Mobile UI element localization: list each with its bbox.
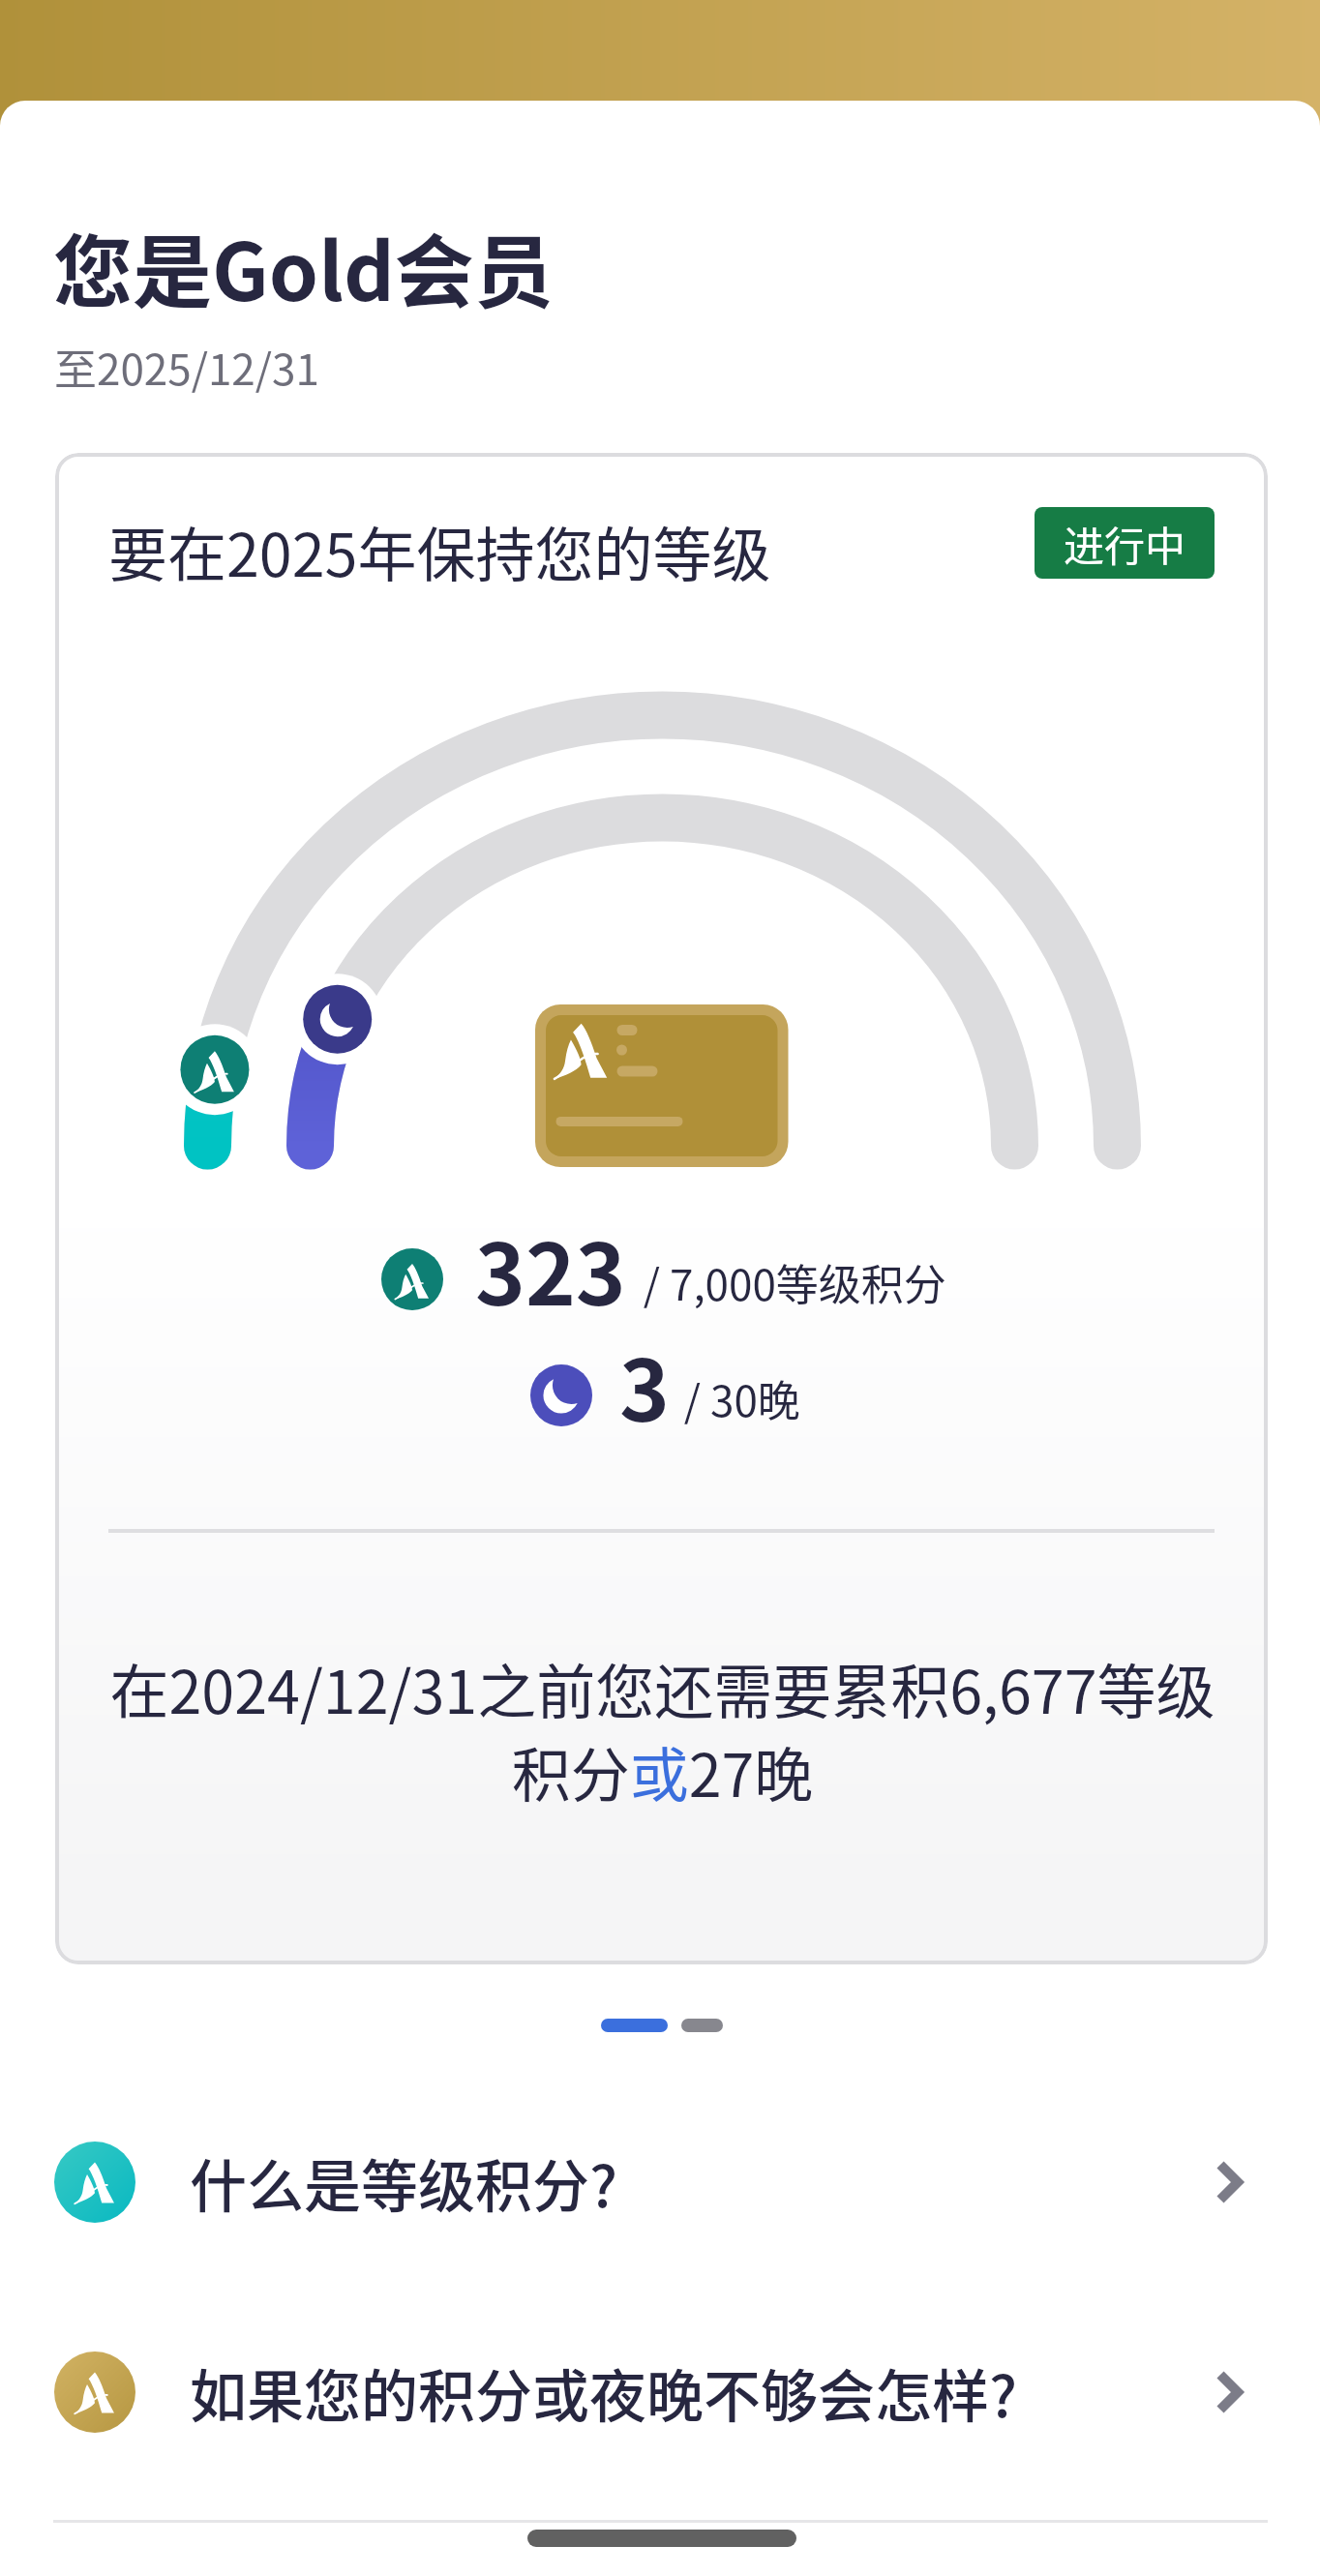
button[interactable]: 第 1 页 bbox=[601, 2019, 668, 2032]
button[interactable]: 打开 bbox=[1215, 2375, 1258, 2417]
staticText: 323 bbox=[475, 1207, 626, 1330]
staticText: 要在2025年保持您的等级 bbox=[108, 508, 771, 593]
button[interactable]: 打开 bbox=[1215, 2165, 1258, 2207]
staticText: 什么是等级积分? bbox=[190, 2142, 618, 2224]
button[interactable]: 第 2 页 bbox=[681, 2019, 723, 2032]
staticText: 进行中 bbox=[1064, 514, 1186, 573]
staticText: / 30晚 bbox=[675, 1367, 800, 1429]
staticText: 您是Gold会员 bbox=[53, 209, 554, 324]
staticText: / 7,000等级积分 bbox=[634, 1251, 946, 1313]
staticText: 如果您的积分或夜晚不够会怎样? bbox=[190, 2351, 1018, 2434]
staticText: 在2024/12/31之前您还需要累积6,677等级积分或27晚 bbox=[104, 1645, 1221, 1813]
staticText: 至2025/12/31 bbox=[54, 336, 319, 398]
button[interactable]: 进行中 bbox=[1035, 507, 1215, 579]
button[interactable]: 要在2025年保持您的等级 bbox=[55, 453, 1268, 1964]
staticText: 3 bbox=[619, 1323, 670, 1446]
button[interactable]: 什么是等级积分? bbox=[0, 2082, 1320, 2272]
button[interactable]: 如果您的积分或夜晚不够会怎样? bbox=[0, 2292, 1320, 2482]
